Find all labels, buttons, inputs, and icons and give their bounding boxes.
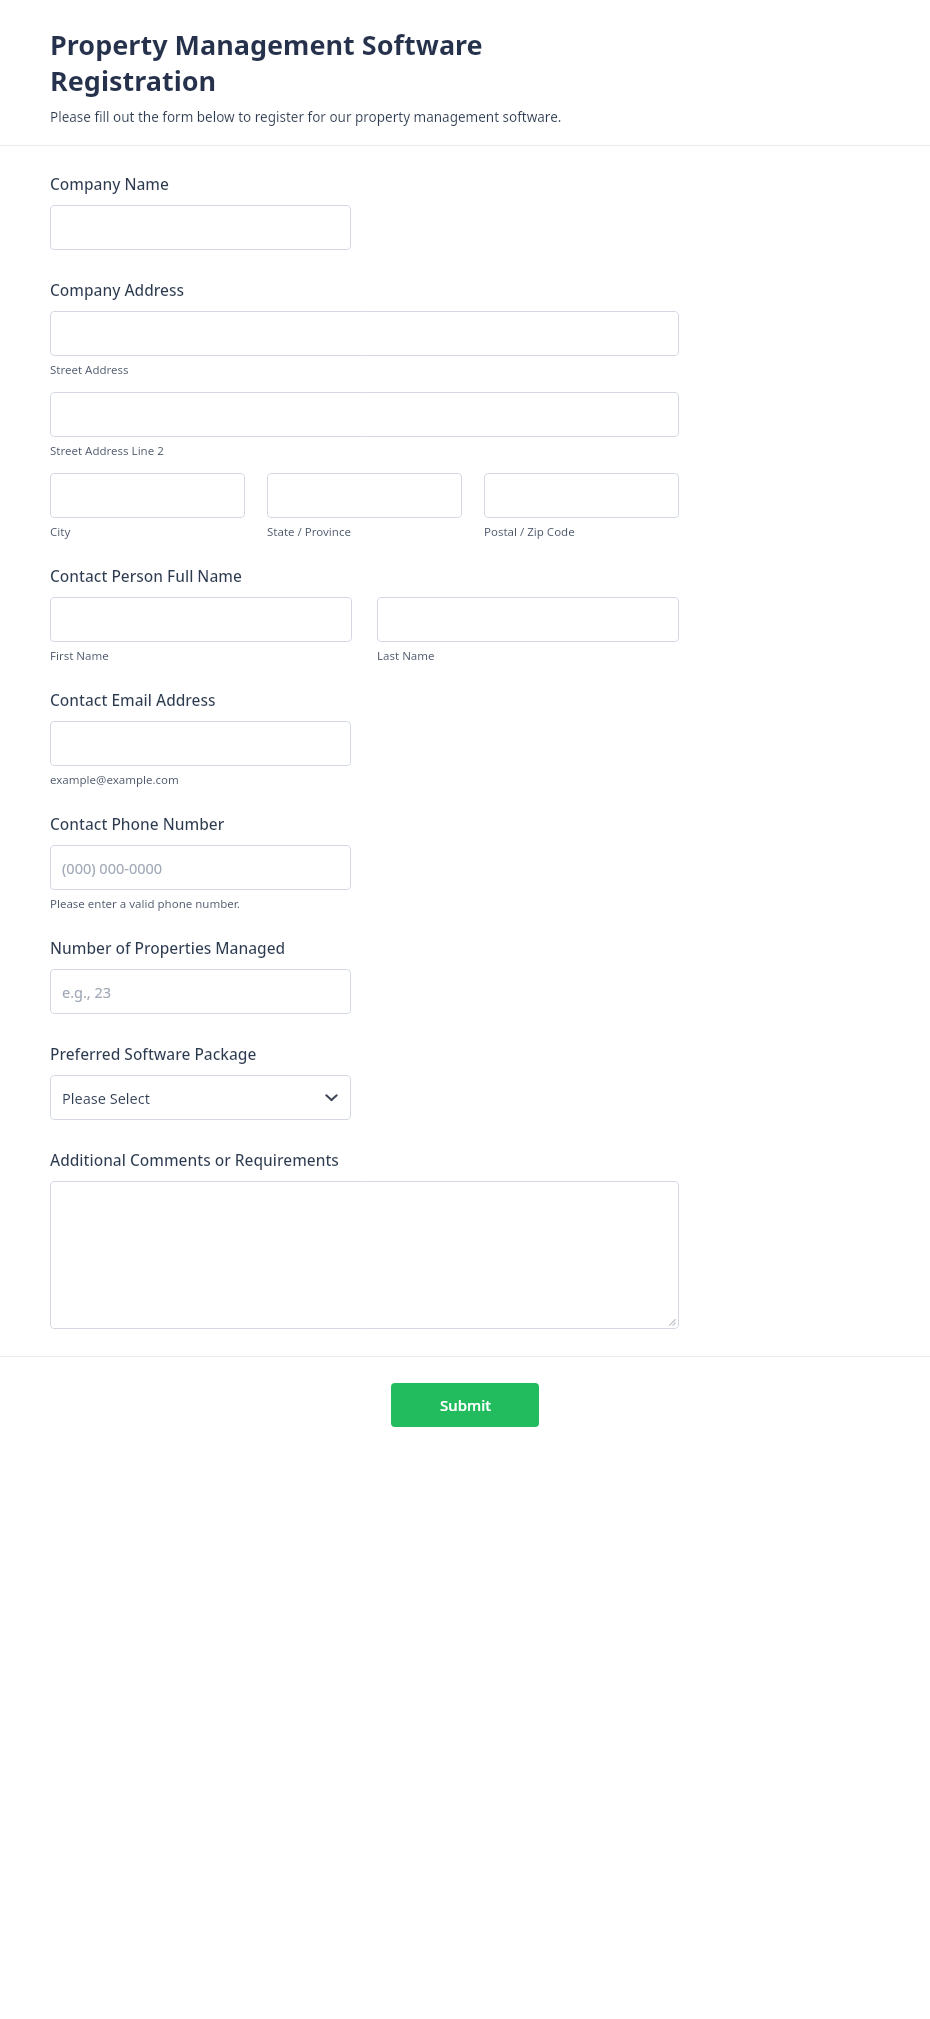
staticText: State / Province xyxy=(267,524,351,540)
staticText: example@example.com xyxy=(50,772,179,788)
button[interactable]: Contact Email Address xyxy=(50,721,351,766)
staticText: Contact Phone Number xyxy=(50,813,225,834)
staticText: Street Address xyxy=(50,362,129,378)
button[interactable]: State / Province xyxy=(267,473,462,518)
staticText: Contact Email Address xyxy=(50,689,216,710)
staticText: e.g., 23 xyxy=(62,982,112,1002)
staticText: Company Name xyxy=(50,173,169,194)
staticText: Preferred Software Package xyxy=(50,1043,257,1064)
staticText: Additional Comments or Requirements xyxy=(50,1149,339,1170)
button[interactable]: Number of Properties Managed xyxy=(50,969,351,1014)
staticText: Number of Properties Managed xyxy=(50,937,286,958)
staticText: First Name xyxy=(50,648,109,664)
staticText: Submit xyxy=(440,1395,491,1415)
button[interactable]: Street Address xyxy=(50,311,679,356)
staticText: Last Name xyxy=(377,648,435,664)
staticText: Contact Person Full Name xyxy=(50,565,242,586)
button[interactable]: Last Name xyxy=(377,597,679,642)
button[interactable]: Company Name xyxy=(50,205,351,250)
button[interactable]: First Name xyxy=(50,597,352,642)
staticText: Please Select xyxy=(62,1088,150,1108)
staticText: Postal / Zip Code xyxy=(484,524,575,540)
button[interactable]: Preferred Software Package xyxy=(50,1075,351,1120)
button[interactable]: Postal / Zip Code xyxy=(484,473,679,518)
staticText: Property Management Software Registratio… xyxy=(50,26,550,99)
staticText: Street Address Line 2 xyxy=(50,443,164,459)
button[interactable]: Street Address Line 2 xyxy=(50,392,679,437)
button[interactable]: Submit xyxy=(391,1383,539,1427)
button[interactable]: City xyxy=(50,473,245,518)
staticText: Company Address xyxy=(50,279,184,300)
staticText: City xyxy=(50,524,71,540)
staticText: Please fill out the form below to regist… xyxy=(50,108,562,126)
staticText: Please enter a valid phone number. xyxy=(50,896,240,912)
button[interactable]: Contact Phone Number xyxy=(50,845,351,890)
button[interactable]: Additional Comments or Requirements xyxy=(50,1181,679,1329)
staticText: (000) 000-0000 xyxy=(62,858,163,878)
